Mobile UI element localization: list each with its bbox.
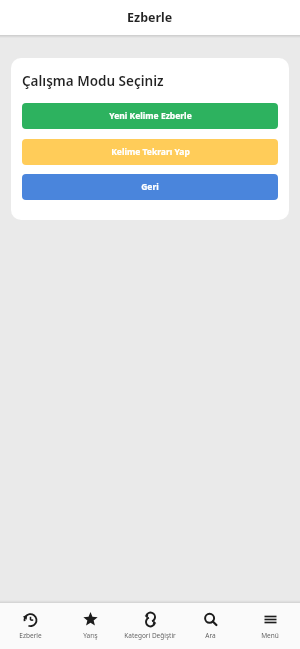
staticText: Ara bbox=[205, 631, 216, 640]
staticText: Çalışma Modu Seçiniz bbox=[22, 72, 164, 90]
staticText: Ezberle bbox=[127, 9, 173, 26]
staticText: Ezberle bbox=[19, 631, 42, 640]
staticText: Kategori Değiştir bbox=[124, 631, 176, 640]
staticText: Geri bbox=[141, 181, 159, 193]
staticText: Kelime Tekrarı Yap bbox=[111, 146, 190, 158]
staticText: Yarış bbox=[83, 631, 98, 640]
button[interactable]: Ara bbox=[180, 603, 240, 649]
button[interactable]: Kategori Değiştir bbox=[120, 603, 180, 649]
staticText: Menü bbox=[261, 631, 279, 640]
staticText: Yeni Kelime Ezberle bbox=[109, 110, 192, 122]
button[interactable]: Ezberle bbox=[0, 603, 60, 649]
button[interactable]: Yeni Kelime Ezberle bbox=[22, 103, 278, 129]
button[interactable]: Geri bbox=[22, 174, 278, 200]
button[interactable]: Yarış bbox=[60, 603, 120, 649]
button[interactable]: Menü bbox=[240, 603, 300, 649]
button[interactable]: Kelime Tekrarı Yap bbox=[22, 139, 278, 165]
